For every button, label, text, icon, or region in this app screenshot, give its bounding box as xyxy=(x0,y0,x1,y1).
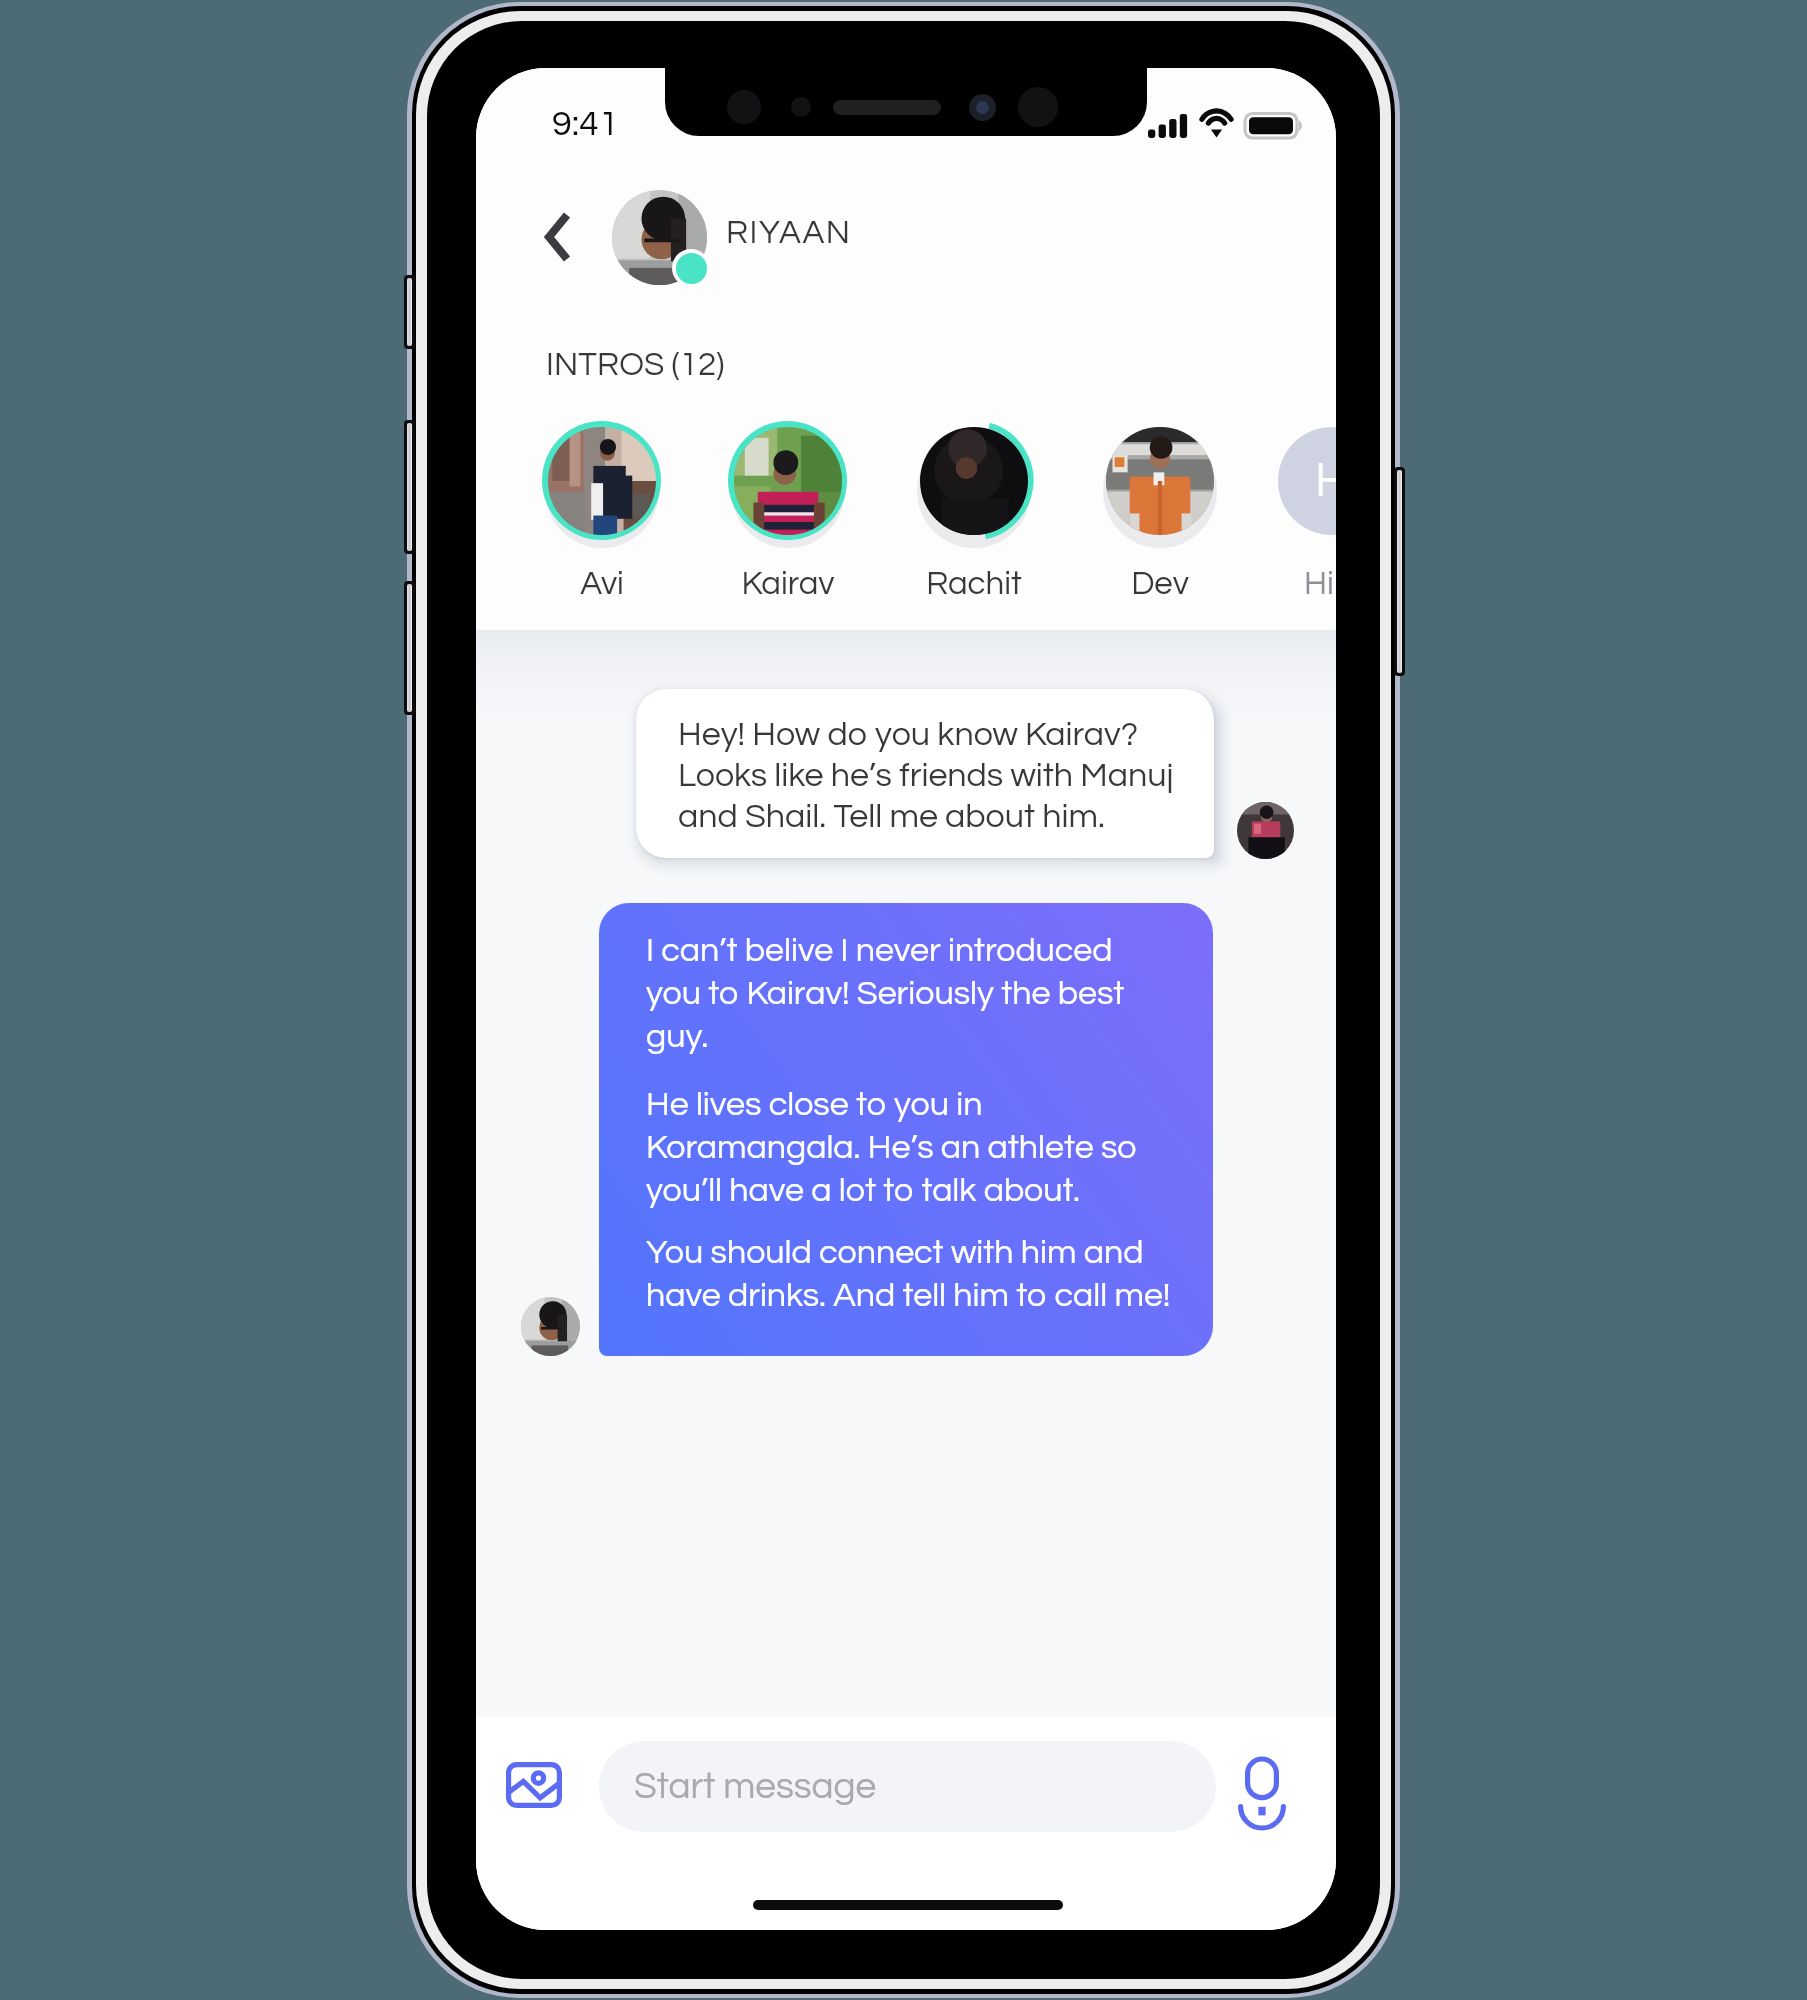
button[interactable]: Hey! How do you know Kairav? Looks like … xyxy=(636,689,1214,858)
button[interactable]: I can’t belive I never introduced you to… xyxy=(599,903,1213,1356)
button[interactable]: Voice message xyxy=(1224,1749,1300,1825)
button[interactable]: Add image xyxy=(494,1745,574,1825)
staticText: Dev xyxy=(1098,567,1222,601)
staticText: Rachit xyxy=(912,567,1036,601)
staticText: H xyxy=(1315,457,1336,506)
button[interactable]: Rachit xyxy=(912,420,1036,620)
staticText: Hi xyxy=(1304,567,1334,601)
button[interactable]: Avi xyxy=(540,420,664,620)
staticText: RIYAAN xyxy=(726,216,852,250)
staticText: 9:41 xyxy=(552,105,619,142)
staticText: Avi xyxy=(540,567,664,601)
button[interactable]: Dev xyxy=(1098,420,1222,620)
staticText: INTROS (12) xyxy=(546,348,725,382)
button[interactable]: RIYAAN xyxy=(606,186,936,292)
button[interactable]: Start message xyxy=(599,1741,1216,1832)
staticText: Kairav xyxy=(726,567,850,601)
button[interactable]: Kairav xyxy=(726,420,850,620)
staticText: I can’t belive I never introduced you to… xyxy=(646,933,1125,1054)
staticText: He lives close to you in Koramangala. He… xyxy=(646,1087,1137,1208)
button[interactable]: H xyxy=(1278,420,1336,620)
staticText: Start message xyxy=(634,1768,877,1806)
button[interactable]: Back xyxy=(526,187,590,287)
staticText: Hey! How do you know Kairav? Looks like … xyxy=(678,717,1174,834)
staticText: You should connect with him and have dri… xyxy=(646,1235,1171,1313)
